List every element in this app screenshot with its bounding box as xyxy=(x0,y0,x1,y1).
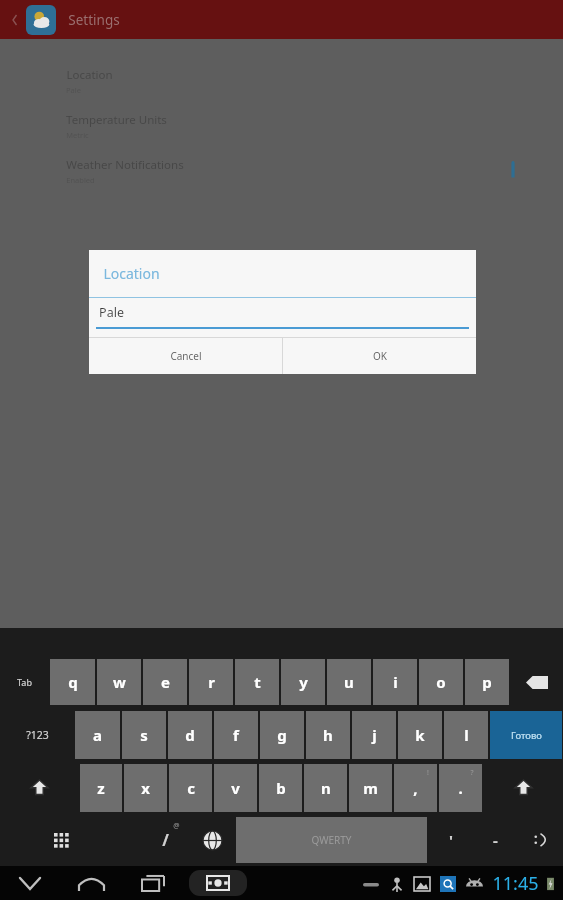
button[interactable]: u xyxy=(327,659,371,705)
button[interactable] xyxy=(1,764,78,812)
button[interactable] xyxy=(519,817,562,863)
button[interactable]: r xyxy=(189,659,233,705)
staticText: f xyxy=(233,725,239,745)
button[interactable]: t xyxy=(235,659,279,705)
staticText: ' xyxy=(449,830,453,850)
staticText: Tab xyxy=(17,676,32,688)
staticText: u xyxy=(344,672,354,692)
staticText: l xyxy=(464,725,469,745)
staticText: QWERTY xyxy=(311,833,352,847)
staticText: t xyxy=(254,672,261,692)
staticText: o xyxy=(436,672,446,692)
staticText: m xyxy=(363,778,378,798)
button[interactable]: OK xyxy=(283,338,476,374)
button[interactable]: o xyxy=(419,659,463,705)
button[interactable]: Hide keyboard xyxy=(0,866,60,900)
staticText: Location xyxy=(66,67,113,83)
button[interactable]: g xyxy=(260,711,304,759)
staticText: q xyxy=(68,672,78,692)
button[interactable]: x xyxy=(124,764,167,812)
staticText: d xyxy=(185,725,195,745)
button[interactable]: f xyxy=(214,711,258,759)
button[interactable]: Готово xyxy=(490,711,562,759)
staticText: / xyxy=(162,829,169,851)
button[interactable]: Back xyxy=(4,9,26,31)
staticText: Location xyxy=(103,264,160,283)
button[interactable]: y xyxy=(281,659,325,705)
staticText: ! xyxy=(427,768,429,778)
staticText: p xyxy=(482,672,492,692)
button[interactable]: j xyxy=(352,711,396,759)
staticText: z xyxy=(97,778,105,798)
button[interactable]: QWERTY xyxy=(236,817,427,863)
button[interactable]: d xyxy=(168,711,212,759)
staticText: @ xyxy=(173,821,180,831)
button[interactable]: . xyxy=(439,764,482,812)
button[interactable]: s xyxy=(122,711,166,759)
button[interactable]: / xyxy=(142,817,188,863)
button[interactable]: v xyxy=(214,764,257,812)
button[interactable]: a xyxy=(75,711,120,759)
staticText: - xyxy=(493,830,498,850)
button[interactable]: ' xyxy=(429,817,472,863)
staticText: OK xyxy=(373,349,387,363)
staticText: 11:45 xyxy=(492,871,539,896)
staticText: c xyxy=(187,778,195,798)
button[interactable]: m xyxy=(349,764,392,812)
button[interactable] xyxy=(511,659,562,705)
button[interactable]: c xyxy=(169,764,212,812)
button[interactable]: Switch keyboard xyxy=(184,866,252,900)
staticText: x xyxy=(141,778,150,798)
staticText: Pale xyxy=(66,85,81,95)
staticText: i xyxy=(393,672,398,692)
staticText: . xyxy=(458,778,463,798)
staticText: g xyxy=(277,725,287,745)
button[interactable]: b xyxy=(259,764,302,812)
button[interactable]: z xyxy=(80,764,122,812)
button[interactable]: - xyxy=(474,817,517,863)
button[interactable]: q xyxy=(50,659,95,705)
staticText: w xyxy=(113,672,126,692)
button[interactable]: , xyxy=(394,764,437,812)
staticText: r xyxy=(208,672,215,692)
staticText: v xyxy=(231,778,240,798)
button[interactable]: Cancel xyxy=(89,338,282,374)
button[interactable]: w xyxy=(97,659,141,705)
button[interactable] xyxy=(190,817,234,863)
button[interactable]: l xyxy=(444,711,488,759)
staticText: Settings xyxy=(68,11,120,29)
staticText: e xyxy=(161,672,170,692)
button[interactable]: h xyxy=(306,711,350,759)
button[interactable]: n xyxy=(304,764,347,812)
staticText: Weather Notifications xyxy=(66,157,184,173)
staticText: h xyxy=(323,725,333,745)
button[interactable]: Recents xyxy=(122,866,184,900)
button[interactable] xyxy=(34,817,89,863)
button[interactable]: e xyxy=(143,659,187,705)
staticText: , xyxy=(413,778,418,798)
button[interactable]: Tab xyxy=(1,659,48,705)
button[interactable]: i xyxy=(373,659,417,705)
button[interactable]: Weather Notifications xyxy=(66,157,563,185)
button[interactable]: p xyxy=(465,659,509,705)
staticText: Готово xyxy=(511,729,542,742)
staticText: n xyxy=(321,778,331,798)
staticText: s xyxy=(140,725,148,745)
button[interactable]: k xyxy=(398,711,442,759)
staticText: Cancel xyxy=(170,349,202,363)
staticText: y xyxy=(299,672,308,692)
button[interactable]: Home xyxy=(60,866,122,900)
staticText: a xyxy=(93,725,102,745)
staticText: k xyxy=(415,725,425,745)
staticText: Temperature Units xyxy=(66,112,167,128)
button[interactable]: ?123 xyxy=(1,711,73,759)
staticText: j xyxy=(372,725,377,745)
button[interactable] xyxy=(484,764,562,812)
staticText: b xyxy=(276,778,286,798)
staticText: ?123 xyxy=(26,728,49,742)
